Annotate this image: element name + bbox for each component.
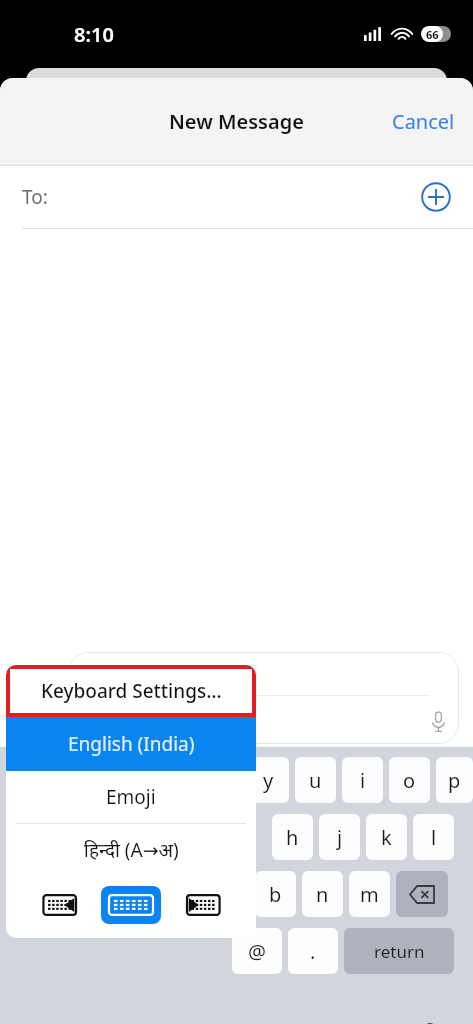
staticText: m bbox=[360, 881, 379, 908]
button[interactable]: Emoji bbox=[6, 771, 256, 823]
button[interactable]: k bbox=[366, 814, 407, 860]
staticText: @ bbox=[248, 938, 266, 965]
button[interactable]: Keyboard Settings… bbox=[6, 665, 256, 717]
button[interactable]: i bbox=[342, 757, 383, 803]
staticText: हिन्दी (A→अ) bbox=[84, 837, 179, 863]
staticText: Subject bbox=[84, 664, 150, 690]
staticText: j bbox=[337, 824, 343, 851]
staticText: To: bbox=[22, 184, 48, 210]
button[interactable]: o bbox=[389, 757, 430, 803]
staticText: k bbox=[381, 824, 392, 851]
button[interactable]: b bbox=[255, 871, 296, 917]
button[interactable]: h bbox=[272, 814, 313, 860]
staticText: English (India) bbox=[68, 731, 195, 757]
button[interactable]: j bbox=[319, 814, 360, 860]
button[interactable]: Subject bbox=[68, 652, 459, 744]
button[interactable]: हिन्दी (A→अ) bbox=[6, 824, 256, 876]
button[interactable]: p bbox=[436, 757, 473, 803]
staticText: l bbox=[431, 824, 437, 851]
button[interactable]: More options bbox=[17, 692, 51, 726]
button[interactable]: Backspace bbox=[396, 871, 448, 917]
staticText: Cancel bbox=[392, 108, 455, 135]
staticText: i bbox=[360, 767, 366, 794]
staticText: Keyboard Settings… bbox=[41, 678, 222, 704]
button[interactable]: u bbox=[295, 757, 336, 803]
staticText: o bbox=[403, 767, 416, 794]
button[interactable]: Add contact bbox=[421, 182, 451, 212]
staticText: 66 bbox=[426, 27, 439, 42]
staticText: 8:10 bbox=[74, 21, 114, 48]
button[interactable]: l bbox=[413, 814, 454, 860]
button[interactable]: Previous keyboard bbox=[24, 886, 84, 924]
button[interactable]: return bbox=[344, 928, 454, 974]
staticText: h bbox=[286, 824, 299, 851]
button[interactable]: . bbox=[288, 928, 338, 974]
button[interactable]: @ bbox=[232, 928, 282, 974]
button[interactable]: Next keyboard bbox=[179, 886, 239, 924]
staticText: New Message bbox=[169, 108, 304, 135]
button[interactable]: Cancel bbox=[374, 96, 473, 147]
button[interactable]: n bbox=[302, 871, 343, 917]
button[interactable]: y bbox=[248, 757, 289, 803]
button[interactable]: Current keyboard bbox=[101, 886, 161, 924]
other: Dictate bbox=[432, 712, 445, 732]
staticText: n bbox=[316, 881, 329, 908]
button[interactable]: m bbox=[349, 871, 390, 917]
staticText: y bbox=[263, 767, 274, 794]
staticText: p bbox=[448, 767, 461, 794]
staticText: b bbox=[269, 881, 282, 908]
button[interactable]: English (India) bbox=[6, 717, 256, 771]
staticText: Emoji bbox=[106, 784, 156, 810]
staticText: return bbox=[374, 940, 425, 963]
staticText: . bbox=[310, 938, 316, 965]
staticText: u bbox=[309, 767, 322, 794]
